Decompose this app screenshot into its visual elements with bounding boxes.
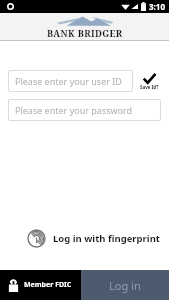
- staticText: Log in with fingerprint: [53, 232, 160, 245]
- button[interactable]: Please enter your password: [8, 99, 161, 121]
- staticText: Member FDIC: [24, 280, 72, 290]
- staticText: Please enter your password: [15, 104, 133, 116]
- button[interactable]: Member FDIC: [0, 270, 81, 300]
- button[interactable]: Log in: [81, 270, 169, 300]
- button[interactable]: Save Id: [137, 70, 161, 92]
- button[interactable]: Please enter your user ID: [8, 70, 133, 92]
- staticText: BANK BRIDGER: [47, 27, 123, 39]
- staticText: Log in: [109, 278, 141, 293]
- staticText: Save Id?: [140, 84, 159, 90]
- staticText: Please enter your user ID: [15, 75, 122, 87]
- button[interactable]: Log in with fingerprint: [28, 230, 169, 247]
- staticText: 3:10: [149, 1, 165, 12]
